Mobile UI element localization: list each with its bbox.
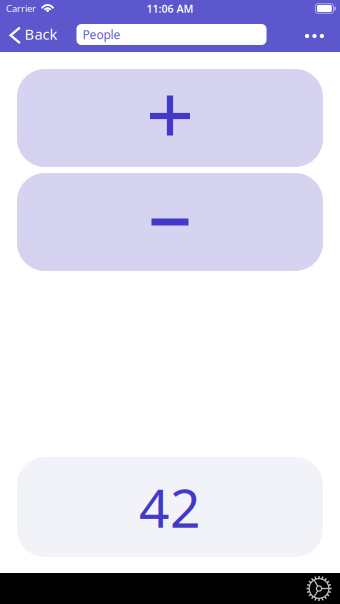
button[interactable]: Increment: [17, 69, 323, 167]
staticText: 11:06 AM: [146, 1, 193, 16]
staticText: Back: [24, 24, 57, 44]
button[interactable]: Decrement: [17, 173, 323, 271]
staticText: Carrier: [6, 2, 36, 15]
button[interactable]: More options: [293, 20, 336, 52]
button[interactable]: Settings: [299, 573, 339, 604]
button[interactable]: Back: [0, 20, 61, 52]
staticText: 42: [139, 472, 201, 542]
staticText: People: [82, 26, 120, 42]
